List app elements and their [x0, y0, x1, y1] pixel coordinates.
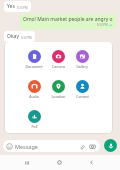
- button[interactable]: Gallery: [70, 50, 94, 69]
- staticText: Okay: [7, 33, 19, 40]
- button[interactable]: Contact: [70, 80, 94, 99]
- staticText: Message: [15, 143, 38, 150]
- button[interactable]: Omo! Main market people are angry o: [20, 14, 116, 29]
- button[interactable]: Location: [46, 80, 70, 99]
- button[interactable]: Okay: [4, 31, 35, 42]
- button[interactable]: Camera: [88, 142, 96, 150]
- staticText: 5:33 PM: [21, 36, 32, 40]
- button[interactable]: Back: [84, 155, 99, 170]
- staticText: Poll: [31, 124, 38, 129]
- staticText: Omo! Main market people are angry o: [23, 16, 113, 23]
- staticText: Yes: [7, 3, 15, 10]
- button[interactable]: Home: [52, 155, 67, 170]
- staticText: 5:33 PM: [97, 23, 108, 27]
- staticText: Location: [51, 94, 66, 99]
- staticText: Document: [25, 64, 43, 69]
- staticText: Contact: [76, 94, 89, 99]
- button[interactable]: Record voice message: [104, 139, 117, 152]
- button[interactable]: Yes: [4, 1, 31, 12]
- button[interactable]: Audio: [22, 80, 46, 99]
- button[interactable]: Message: [3, 140, 100, 152]
- button[interactable]: Poll: [22, 110, 46, 129]
- staticText: 5:33 PM: [17, 6, 28, 10]
- staticText: Gallery: [76, 64, 88, 69]
- button[interactable]: Camera: [46, 50, 70, 69]
- staticText: Audio: [29, 94, 39, 99]
- staticText: Camera: [52, 64, 65, 69]
- button[interactable]: Attach: [78, 142, 86, 150]
- button[interactable]: Recent apps: [19, 155, 34, 170]
- button[interactable]: Document: [22, 50, 46, 69]
